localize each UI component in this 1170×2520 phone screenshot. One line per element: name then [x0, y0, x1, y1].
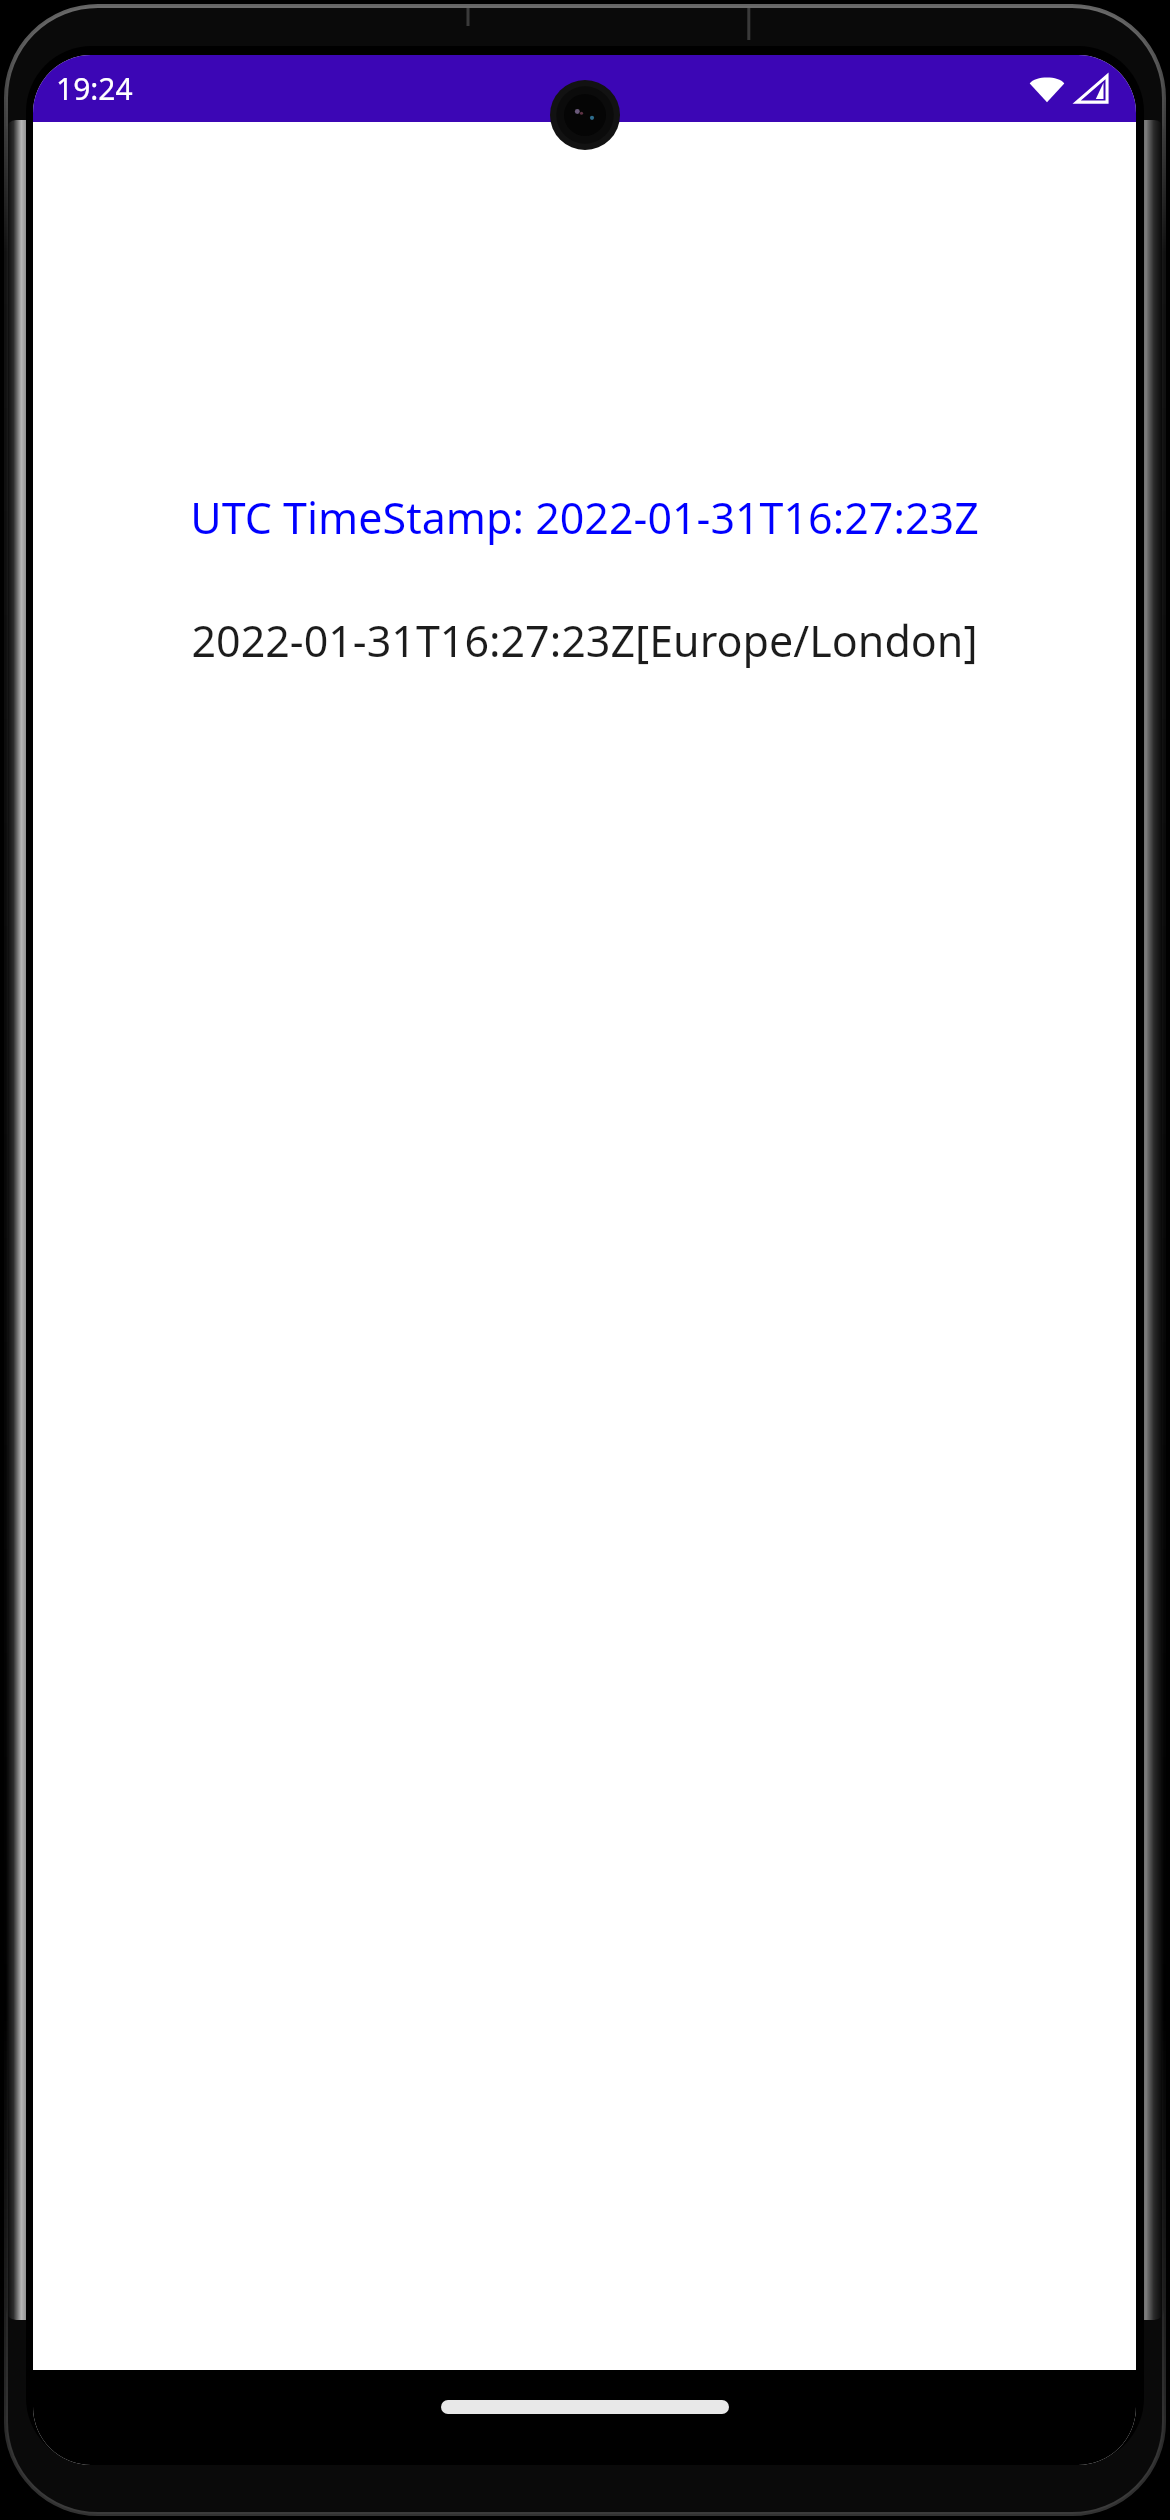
other: Wi-Fi signal: [1029, 75, 1065, 103]
staticText: 2022-01-31T16:27:23Z[Europe/London]: [191, 611, 978, 670]
button[interactable]: 2022-01-31T16:27:23Z[Europe/London]: [33, 605, 1136, 676]
button[interactable]: Home gesture handle: [441, 2400, 729, 2414]
other: Mobile signal strength: [1076, 75, 1108, 103]
staticText: 19:24: [56, 68, 133, 109]
button[interactable]: UTC TimeStamp: 2022-01-31T16:27:23Z: [33, 482, 1136, 553]
staticText: UTC TimeStamp: 2022-01-31T16:27:23Z: [190, 488, 979, 547]
